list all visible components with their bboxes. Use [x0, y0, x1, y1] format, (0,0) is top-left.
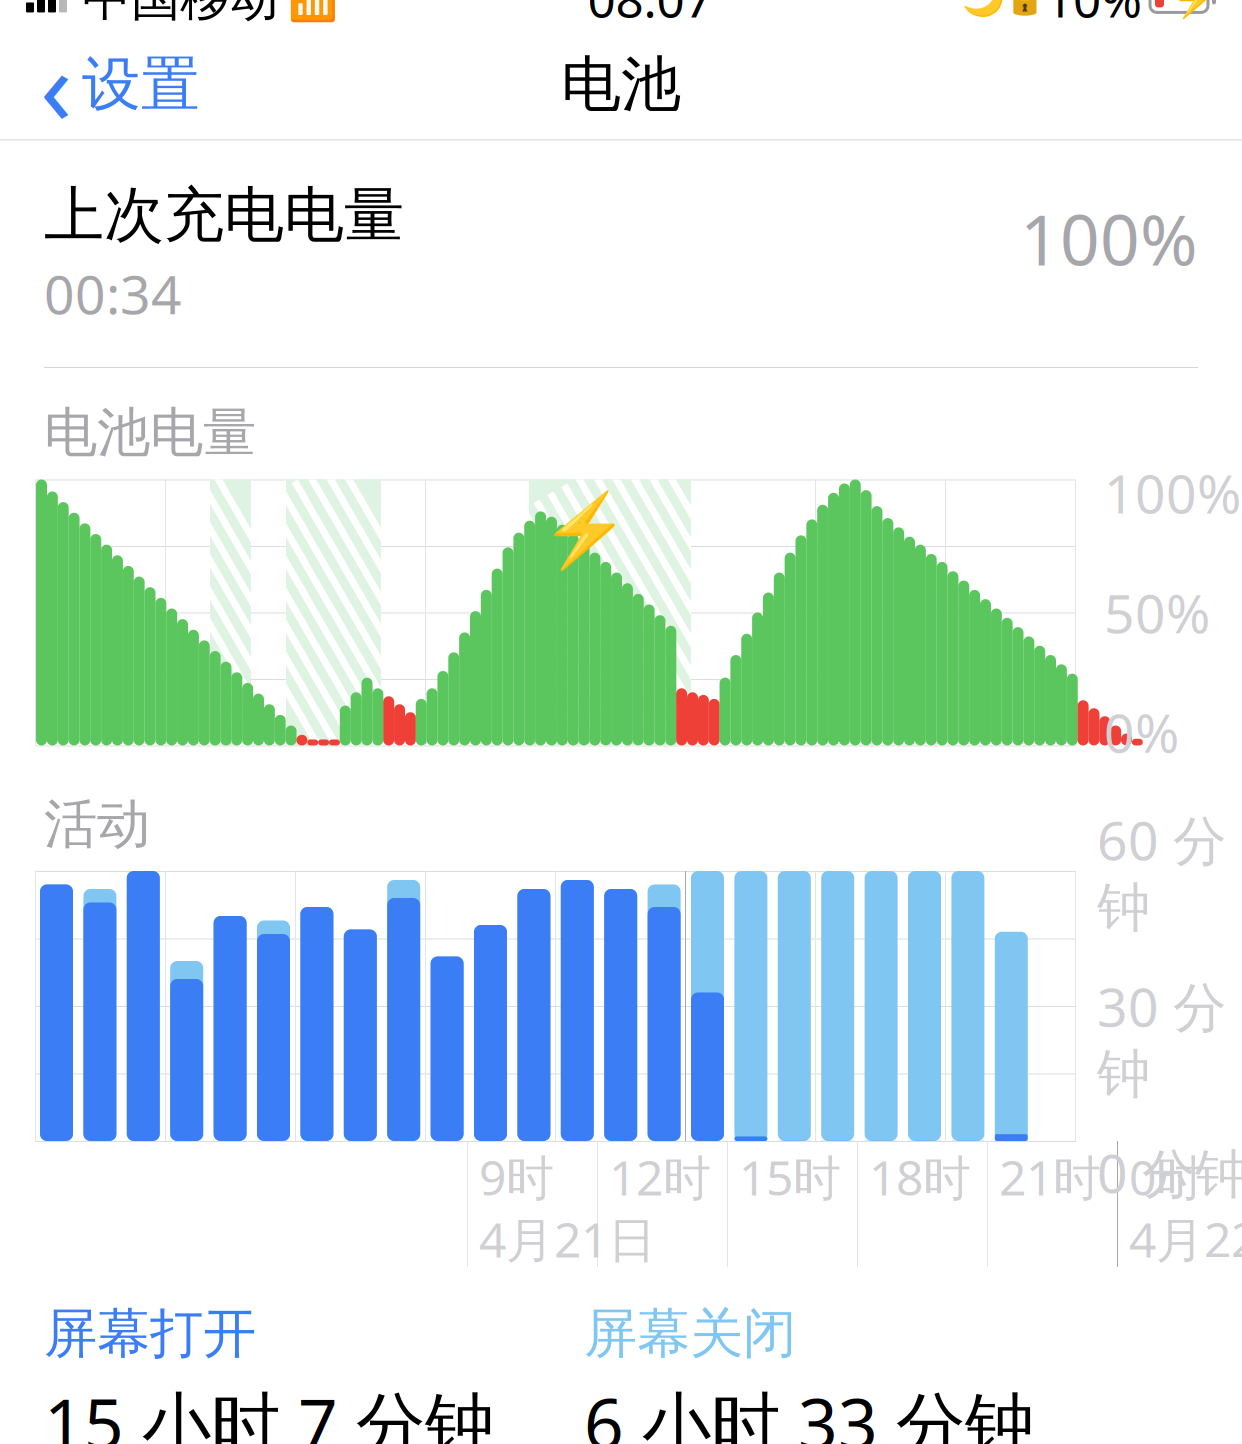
- staticText: 🌙: [962, 0, 1005, 18]
- staticText: 15 小时 7 分钟: [44, 1376, 494, 1444]
- staticText: 21时: [999, 1145, 1101, 1209]
- staticText: 🔒: [1005, 0, 1045, 17]
- staticText: 100%: [1104, 457, 1241, 528]
- staticText: 6 小时 33 分钟: [584, 1376, 1034, 1444]
- staticText: ⚡: [1172, 0, 1218, 20]
- staticText: ‹: [40, 15, 72, 153]
- staticText: 30 分钟: [1097, 971, 1226, 1107]
- staticText: 电池电量: [44, 400, 256, 465]
- staticText: 9时: [479, 1145, 554, 1209]
- staticText: 00:34: [44, 258, 182, 329]
- staticText: 中国移动: [67, 0, 278, 29]
- staticText: 0时: [1129, 1145, 1204, 1209]
- staticText: 60 分钟: [1097, 804, 1226, 940]
- staticText: 08:07: [587, 0, 712, 31]
- staticText: 活动: [44, 791, 150, 857]
- staticText: 100%: [1020, 192, 1198, 284]
- staticText: 📶: [278, 0, 338, 25]
- staticText: 0 分钟: [1097, 1137, 1242, 1208]
- staticText: 15时: [739, 1145, 841, 1209]
- staticText: ⚡: [540, 489, 630, 572]
- staticText: 屏幕关闭: [584, 1301, 796, 1366]
- staticText: 上次充电电量: [44, 178, 404, 252]
- staticText: 50%: [1104, 577, 1210, 648]
- staticText: 4月21日: [479, 1207, 656, 1271]
- staticText: 设置: [82, 48, 200, 120]
- staticText: 0%: [1104, 697, 1179, 767]
- staticText: 12时: [609, 1145, 711, 1209]
- staticText: 屏幕打开: [44, 1301, 256, 1366]
- staticText: 18时: [869, 1145, 971, 1209]
- staticText: 10%: [1045, 0, 1142, 31]
- staticText: 4月22日: [1129, 1207, 1242, 1271]
- button[interactable]: ‹: [26, 9, 214, 159]
- staticText: 电池: [561, 48, 681, 121]
